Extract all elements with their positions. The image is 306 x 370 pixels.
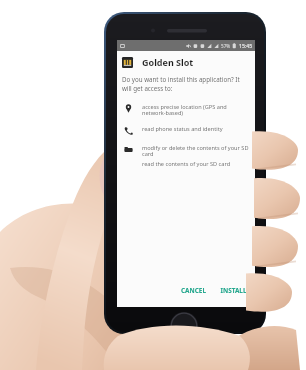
button[interactable]: Home [170,312,198,334]
staticText: read phone status and identity [142,125,223,133]
staticText: CANCEL [181,286,206,295]
staticText: modify or delete the contents of your SD… [142,144,250,158]
staticText: access precise location (GPS and network… [142,103,250,117]
staticText: 57% [221,43,231,49]
button[interactable]: read phone status and identity [117,125,255,136]
button[interactable]: CANCEL [179,284,208,297]
button[interactable]: Golden Slot app icon [122,57,133,68]
staticText: Do you want to install this application?… [122,75,247,93]
button[interactable]: INSTALL [218,284,249,297]
staticText: read the contents of your SD card [142,160,231,168]
button[interactable]: modify or delete the contents of your SD… [117,144,255,168]
staticText: 15:45 [239,42,253,49]
staticText: INSTALL [220,286,247,295]
staticText: Golden Slot [142,56,194,68]
button[interactable]: access precise location (GPS and network… [117,103,255,117]
